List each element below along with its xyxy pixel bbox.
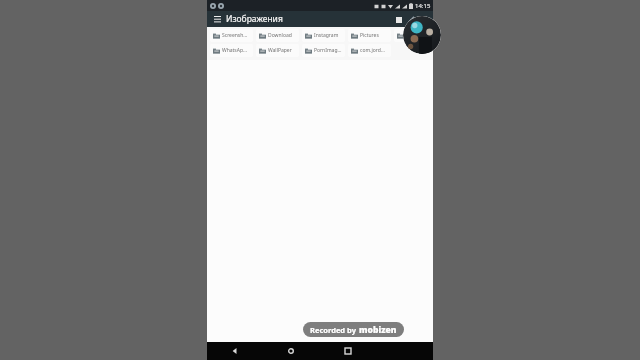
staticText: com.jord... [360, 47, 385, 54]
staticText: Recorded by [310, 325, 356, 335]
button[interactable]: Download [256, 29, 299, 42]
staticText: WallPaper [268, 47, 292, 54]
button[interactable]: com.jord... [348, 44, 391, 57]
button[interactable]: More options [418, 14, 429, 25]
button[interactable]: Screenshots [210, 29, 253, 42]
button[interactable]: Ca [394, 29, 430, 42]
staticText: Pictures [360, 32, 379, 39]
button[interactable]: WhatsApp ... [210, 44, 253, 57]
button[interactable]: Home [263, 342, 319, 360]
staticText: Download [268, 32, 292, 39]
staticText: mobizen [359, 324, 397, 336]
button[interactable]: Back [207, 342, 263, 360]
staticText: Изображения [226, 13, 283, 25]
button[interactable]: Pictures [348, 29, 391, 42]
button[interactable]: Profile photo [403, 16, 441, 54]
staticText: WhatsApp ... [222, 47, 250, 54]
staticText: Screenshots [222, 32, 250, 39]
button[interactable]: PornImages [302, 44, 345, 57]
staticText: PornImages [314, 47, 342, 54]
button[interactable]: Instagram [302, 29, 345, 42]
button[interactable]: Edit [405, 13, 418, 26]
button[interactable]: Open navigation menu [211, 13, 223, 25]
staticText: 14:15 [415, 2, 431, 10]
staticText: Ca [406, 32, 412, 39]
button[interactable]: Select items [392, 13, 405, 26]
button[interactable]: Recent apps [319, 342, 376, 360]
button[interactable]: WallPaper [256, 44, 299, 57]
staticText: Instagram [314, 32, 339, 39]
